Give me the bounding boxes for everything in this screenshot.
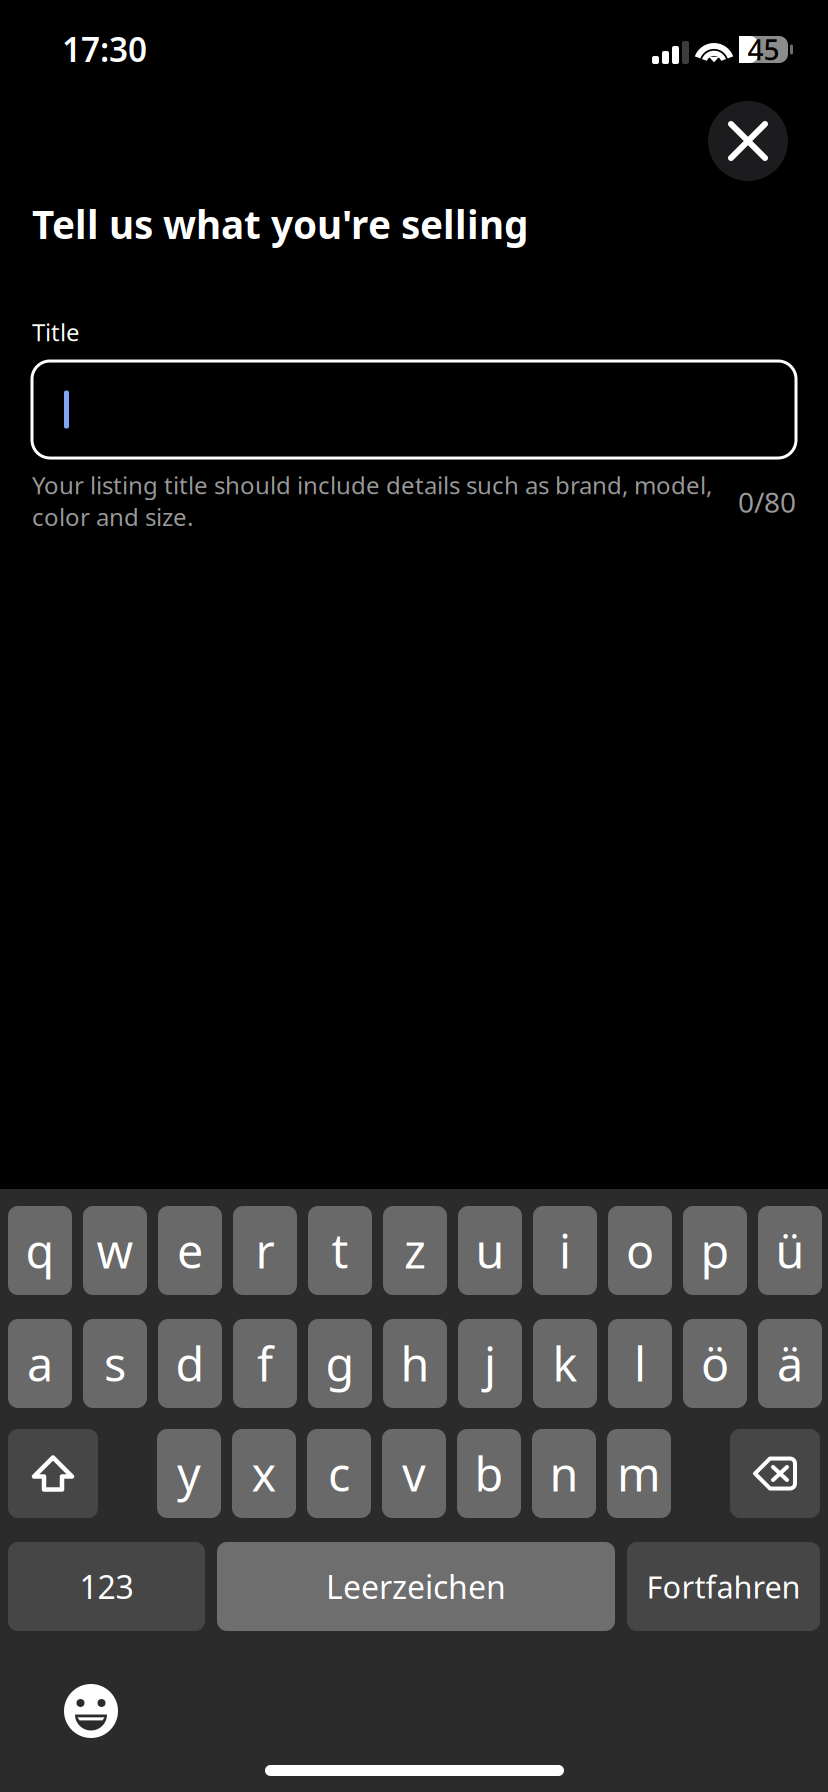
- staticText: Leerzeichen: [326, 1565, 506, 1608]
- button[interactable]: c: [307, 1429, 371, 1518]
- button[interactable]: i: [533, 1206, 597, 1295]
- button[interactable]: Title: [32, 361, 796, 458]
- button[interactable]: h: [383, 1319, 447, 1408]
- button[interactable]: y: [157, 1429, 221, 1518]
- staticText: u: [475, 1219, 504, 1281]
- staticText: ö: [701, 1332, 729, 1394]
- staticText: q: [25, 1219, 54, 1281]
- button[interactable]: l: [608, 1319, 672, 1408]
- staticText: s: [104, 1332, 126, 1394]
- staticText: o: [626, 1219, 654, 1281]
- button[interactable]: r: [233, 1206, 297, 1295]
- staticText: c: [328, 1442, 350, 1504]
- staticText: p: [700, 1219, 729, 1281]
- staticText: ü: [775, 1219, 804, 1281]
- staticText: 17:30: [62, 27, 147, 71]
- button[interactable]: Leerzeichen: [217, 1542, 615, 1631]
- staticText: v: [402, 1442, 426, 1504]
- button[interactable]: s: [83, 1319, 147, 1408]
- staticText: Title: [32, 316, 80, 348]
- staticText: Fortfahren: [646, 1566, 800, 1607]
- button[interactable]: ä: [758, 1319, 822, 1408]
- button[interactable]: x: [232, 1429, 296, 1518]
- button[interactable]: e: [158, 1206, 222, 1295]
- button[interactable]: Delete: [730, 1429, 820, 1518]
- staticText: z: [404, 1219, 426, 1281]
- staticText: 45: [747, 31, 779, 68]
- staticText: b: [474, 1442, 503, 1504]
- button[interactable]: ü: [758, 1206, 822, 1295]
- button[interactable]: p: [683, 1206, 747, 1295]
- button[interactable]: f: [233, 1319, 297, 1408]
- button[interactable]: d: [158, 1319, 222, 1408]
- staticText: h: [400, 1332, 429, 1394]
- button[interactable]: w: [83, 1206, 147, 1295]
- staticText: ä: [777, 1332, 803, 1394]
- staticText: Tell us what you're selling: [32, 198, 528, 250]
- staticText: g: [325, 1332, 354, 1394]
- button[interactable]: u: [458, 1206, 522, 1295]
- button[interactable]: b: [457, 1429, 521, 1518]
- staticText: l: [634, 1332, 646, 1394]
- staticText: r: [255, 1219, 274, 1281]
- staticText: n: [549, 1442, 578, 1504]
- button[interactable]: t: [308, 1206, 372, 1295]
- staticText: 0/80: [738, 483, 796, 521]
- staticText: j: [484, 1332, 496, 1394]
- staticText: w: [96, 1219, 133, 1281]
- button[interactable]: Fortfahren: [627, 1542, 820, 1631]
- staticText: f: [257, 1332, 273, 1394]
- button[interactable]: a: [8, 1319, 72, 1408]
- staticText: a: [27, 1332, 53, 1394]
- button[interactable]: Shift: [8, 1429, 98, 1518]
- button[interactable]: Close: [708, 101, 788, 181]
- staticText: Your listing title should include detail…: [32, 469, 712, 533]
- staticText: 123: [79, 1565, 133, 1608]
- button[interactable]: q: [8, 1206, 72, 1295]
- staticText: e: [177, 1219, 203, 1281]
- staticText: x: [251, 1442, 276, 1504]
- button[interactable]: z: [383, 1206, 447, 1295]
- button[interactable]: 123: [8, 1542, 205, 1631]
- button[interactable]: m: [607, 1429, 671, 1518]
- staticText: d: [175, 1332, 204, 1394]
- staticText: t: [331, 1219, 348, 1281]
- button[interactable]: n: [532, 1429, 596, 1518]
- button[interactable]: o: [608, 1206, 672, 1295]
- button[interactable]: Emoji: [64, 1684, 118, 1738]
- staticText: i: [559, 1219, 571, 1281]
- button[interactable]: v: [382, 1429, 446, 1518]
- staticText: k: [552, 1332, 577, 1394]
- button[interactable]: g: [308, 1319, 372, 1408]
- button[interactable]: k: [533, 1319, 597, 1408]
- staticText: y: [177, 1442, 201, 1504]
- button[interactable]: j: [458, 1319, 522, 1408]
- staticText: m: [617, 1442, 661, 1504]
- button[interactable]: ö: [683, 1319, 747, 1408]
